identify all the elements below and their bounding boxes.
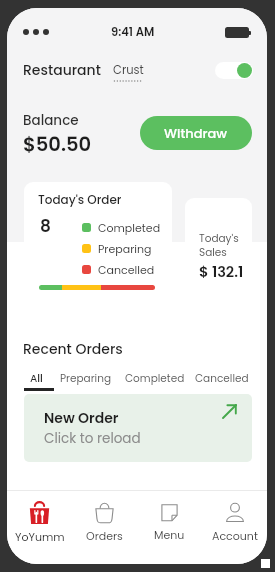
staticText: Completed [125,371,185,386]
staticText: Orders [86,528,123,543]
staticText: $50.50 [23,131,92,158]
staticText: Completed [98,220,161,235]
staticText: Balance [23,111,79,130]
button[interactable]: Account [202,491,267,553]
button[interactable]: Today's Sales [185,198,252,295]
staticText: Withdraw [164,124,228,142]
button[interactable]: Completed [125,371,185,386]
button[interactable]: YoYumm [7,491,72,553]
staticText: Menu [154,527,185,542]
staticText: Cancelled [98,262,155,277]
staticText: All [30,371,43,386]
button[interactable]: Cancelled [195,371,249,386]
staticText: 8 [40,214,51,238]
staticText: Crust [113,62,144,78]
staticText: Today's Order [38,191,122,208]
button[interactable]: Today's Order [24,182,172,307]
button[interactable]: New Order [24,394,252,462]
staticText: YoYumm [15,529,65,544]
button[interactable]: Withdraw [140,116,252,150]
staticText: Restaurant [23,60,101,80]
button[interactable]: Restaurant open toggle [215,62,253,79]
staticText: 9:41 AM [111,24,155,40]
staticText: Account [212,528,258,543]
staticText: $ 132.1 [199,262,244,282]
button[interactable]: All [30,371,43,386]
staticText: Preparing [98,241,152,256]
staticText: Cancelled [195,371,249,386]
button[interactable]: Orders [72,491,137,553]
button[interactable]: Menu [137,491,202,553]
staticText: New Order [44,408,119,428]
staticText: Click to reload [44,429,141,448]
staticText: Preparing [60,371,112,386]
staticText: Recent Orders [23,339,123,359]
button[interactable]: Preparing [60,371,112,386]
staticText: Today's Sales [199,231,239,260]
